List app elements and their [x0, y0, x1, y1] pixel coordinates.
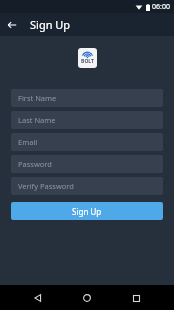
staticText: Verify Password — [18, 181, 74, 191]
button[interactable]: Bolt logo — [78, 48, 97, 68]
button[interactable]: Home — [76, 287, 98, 309]
staticText: Password — [18, 159, 52, 169]
button[interactable]: First Name — [11, 89, 163, 107]
button[interactable]: Email — [11, 133, 163, 151]
staticText: Email — [18, 137, 38, 147]
staticText: Sign Up — [30, 17, 71, 32]
staticText: Last Name — [18, 115, 56, 125]
button[interactable]: Back — [27, 287, 49, 309]
button[interactable]: Back — [0, 13, 23, 36]
staticText: Sign Up — [72, 206, 102, 217]
staticText: First Name — [18, 93, 57, 103]
staticText: BOLT — [81, 58, 94, 65]
button[interactable]: Password — [11, 155, 163, 173]
button[interactable]: Verify Password — [11, 177, 163, 195]
button[interactable]: Last Name — [11, 111, 163, 129]
staticText: 06:00 — [152, 2, 170, 12]
button[interactable]: Recent apps — [125, 287, 147, 309]
button[interactable]: Sign Up — [11, 202, 163, 220]
